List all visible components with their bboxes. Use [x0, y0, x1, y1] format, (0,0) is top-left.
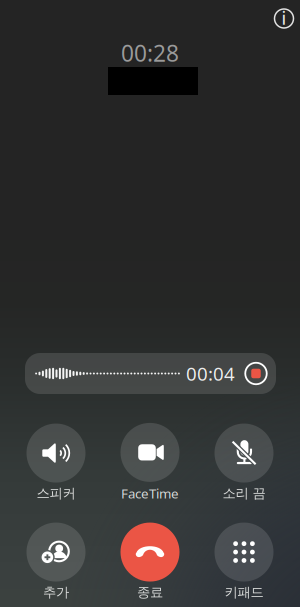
button[interactable]: 종료 — [103, 517, 197, 605]
button[interactable]: Call details — [265, 0, 300, 37]
button[interactable]: 키패드 — [197, 517, 291, 605]
button[interactable]: 소리 끔 — [197, 418, 291, 506]
staticText: FaceTime — [121, 484, 179, 502]
staticText: 키패드 — [224, 584, 263, 600]
staticText: 스피커 — [36, 485, 75, 501]
staticText: 소리 끔 — [222, 485, 265, 501]
button[interactable]: 추가 — [9, 517, 103, 605]
staticText: 추가 — [43, 584, 69, 600]
button[interactable]: FaceTime — [103, 418, 197, 506]
staticText: i — [281, 6, 286, 29]
staticText: 00:04 — [186, 361, 235, 386]
button[interactable]: 스피커 — [9, 418, 103, 506]
staticText: 종료 — [137, 584, 163, 600]
button[interactable]: Stop recording — [241, 358, 271, 388]
staticText: 00:28 — [121, 38, 179, 68]
